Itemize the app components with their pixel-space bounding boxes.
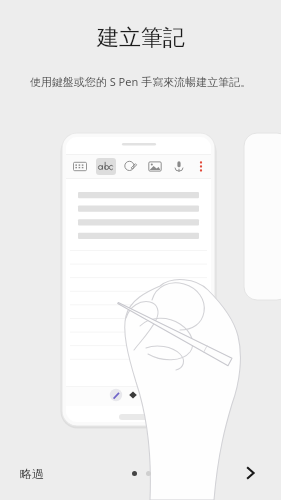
staticText: 建立筆記 [97, 24, 185, 52]
staticText: 略過 [20, 466, 44, 481]
button[interactable]: Next [233, 456, 267, 490]
staticText: 使用鍵盤或您的 S Pen 手寫來流暢建立筆記。 [18, 74, 263, 89]
button[interactable]: 略過 [14, 460, 50, 487]
